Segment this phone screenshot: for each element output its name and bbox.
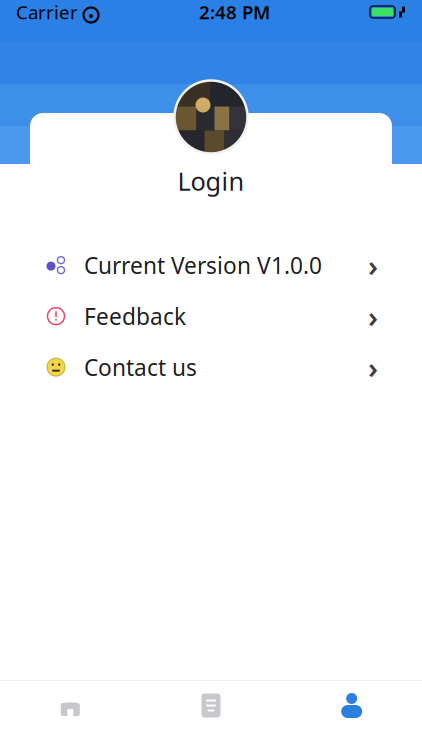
staticText: Carrier bbox=[16, 0, 78, 24]
staticText: Current Version V1.0.0 bbox=[84, 250, 322, 280]
staticText: Feedback bbox=[84, 301, 186, 331]
button[interactable]: Feedback bbox=[30, 291, 392, 342]
button[interactable]: Home bbox=[0, 681, 141, 730]
button[interactable]: Profile bbox=[281, 681, 422, 730]
staticText: Login bbox=[177, 164, 244, 198]
staticText: › bbox=[368, 348, 378, 387]
button[interactable]: Documents bbox=[141, 681, 281, 730]
button[interactable]: Contact us bbox=[30, 342, 392, 393]
staticText: Contact us bbox=[84, 352, 197, 382]
button[interactable]: Current Version V1.0.0 bbox=[30, 240, 392, 291]
staticText: 2:48 PM bbox=[199, 0, 270, 24]
staticText: › bbox=[368, 297, 378, 336]
staticText: › bbox=[368, 246, 378, 285]
